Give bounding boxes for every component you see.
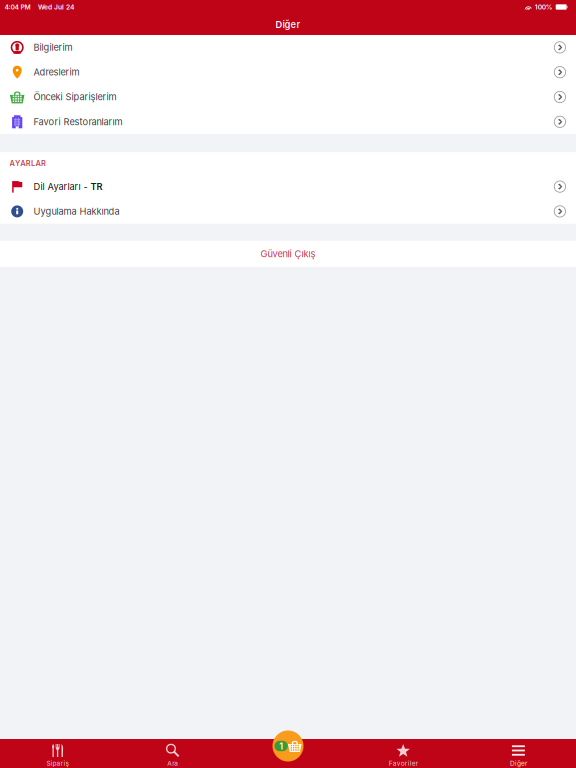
button[interactable]: Uygulama Hakkında (0, 199, 576, 224)
button[interactable]: Sepet (272, 730, 303, 761)
staticText: Dil Ayarları - TR (33, 181, 102, 192)
staticText: Önceki Siparişlerim (33, 91, 116, 103)
staticText: Favori Restoranlarım (33, 116, 122, 127)
button[interactable]: Favori Restoranlarım (0, 109, 576, 134)
staticText: Favoriler (389, 759, 418, 767)
staticText: Uygulama Hakkında (33, 206, 119, 217)
button[interactable]: Güvenli Çıkış (0, 241, 576, 267)
button[interactable]: Adreslerim (0, 60, 576, 85)
staticText: 4:04 PM (4, 3, 30, 11)
button[interactable]: Ara (115, 739, 230, 768)
staticText: AYARLAR (10, 159, 46, 168)
staticText: Ara (167, 759, 178, 767)
staticText: 1 (279, 740, 283, 752)
button[interactable]: Dil Ayarları - TR (0, 174, 576, 199)
button[interactable]: Önceki Siparişlerim (0, 85, 576, 109)
staticText: Güvenli Çıkış (260, 248, 315, 259)
staticText: Sipariş (47, 759, 69, 767)
button[interactable]: Favoriler (346, 739, 461, 768)
staticText: Adreslerim (33, 67, 79, 78)
staticText: Diğer (275, 19, 300, 30)
staticText: 100% (535, 3, 553, 11)
staticText: Wed Jul 24 (38, 3, 74, 11)
staticText: Diğer (510, 759, 527, 767)
staticText: Bilgilerim (33, 42, 72, 53)
button[interactable]: Sipariş (0, 739, 115, 768)
button[interactable]: Bilgilerim (0, 35, 576, 60)
button[interactable]: Diğer (461, 739, 576, 768)
